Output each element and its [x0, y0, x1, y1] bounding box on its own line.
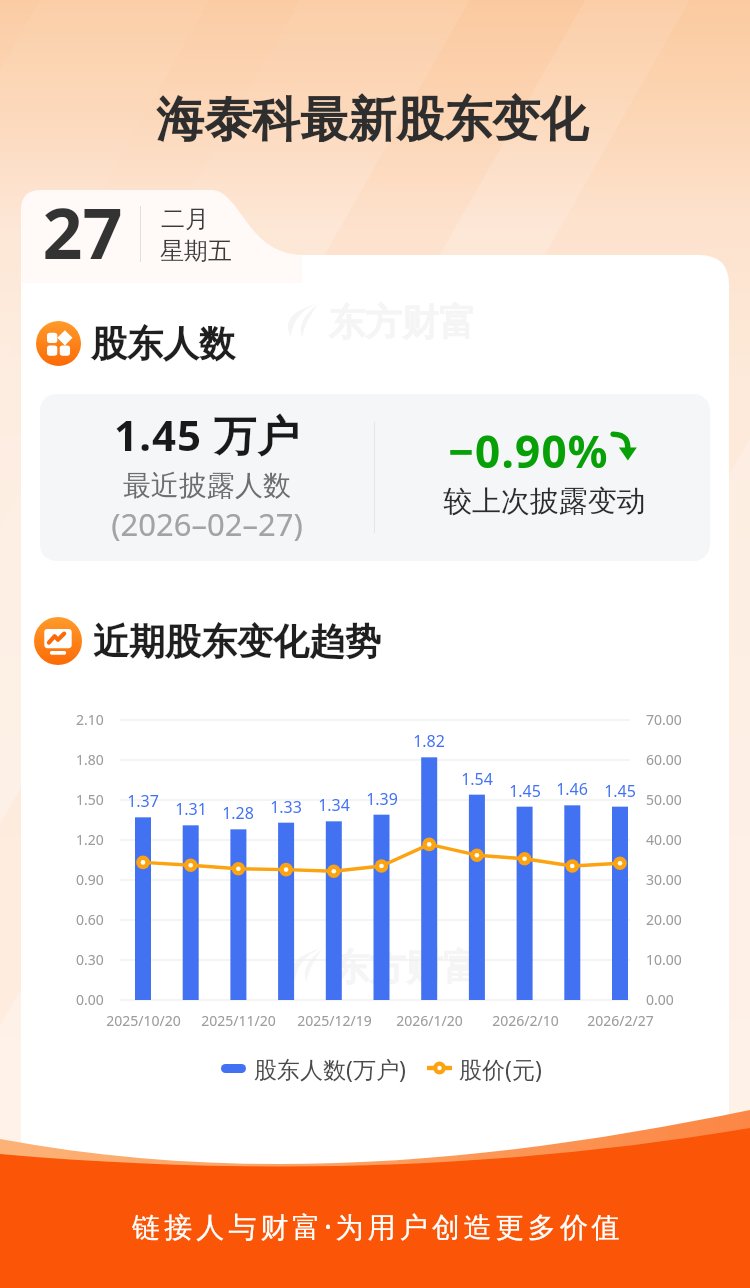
staticText: 1.45	[604, 780, 636, 802]
staticText: 2026/2/27	[587, 1011, 654, 1030]
staticText: 30.00	[646, 870, 682, 889]
staticText: 2026/2/10	[492, 1011, 559, 1030]
button[interactable]: Trend	[34, 617, 381, 665]
staticText: 60.00	[646, 750, 682, 769]
staticText: 27	[42, 184, 123, 264]
staticText: 1.33	[270, 796, 302, 818]
staticText: 1.82	[413, 730, 445, 752]
staticText: 股东人数	[91, 321, 235, 366]
staticText: 股价(元)	[459, 1053, 542, 1084]
staticText: 2.10	[76, 710, 104, 729]
staticText: 2026/1/20	[396, 1011, 463, 1030]
staticText: 0.90	[76, 870, 104, 889]
staticText: 0.30	[76, 950, 104, 969]
staticText: 0.00	[76, 990, 104, 1009]
other: Trend	[34, 617, 82, 665]
staticText: 50.00	[646, 790, 682, 809]
staticText: 较上次披露变动	[443, 483, 646, 520]
staticText: −0.90%	[448, 421, 609, 481]
staticText: 星期五	[160, 236, 232, 266]
staticText: 近期股东变化趋势	[93, 619, 381, 664]
button[interactable]	[21, 190, 273, 282]
staticText: 1.34	[318, 794, 350, 816]
staticText: 东方财富	[328, 299, 476, 346]
staticText: 1.45 万户	[114, 406, 300, 463]
other: Shareholders	[36, 321, 81, 366]
staticText: 1.45	[509, 780, 541, 802]
staticText: 二月	[161, 204, 209, 234]
staticText: 40.00	[646, 830, 682, 849]
staticText: 20.00	[646, 910, 682, 929]
staticText: 东方财富	[332, 944, 480, 991]
staticText: 1.20	[76, 830, 104, 849]
staticText: 2025/12/19	[297, 1011, 372, 1030]
staticText: 70.00	[646, 710, 682, 729]
staticText: (2026–02–27)	[111, 503, 303, 545]
button[interactable]: Shareholders	[36, 321, 235, 366]
staticText: 10.00	[646, 950, 682, 969]
staticText: 1.28	[222, 802, 254, 824]
staticText: 1.39	[366, 788, 398, 810]
staticText: 1.50	[76, 790, 104, 809]
staticText: 海泰科最新股东变化	[156, 90, 588, 150]
staticText: 0.00	[646, 990, 674, 1009]
staticText: 最近披露人数	[123, 468, 291, 503]
staticText: 链接人与财富·为用户创造更多价值	[132, 1207, 624, 1245]
staticText: 1.46	[556, 778, 588, 800]
staticText: 1.80	[76, 750, 104, 769]
staticText: 1.37	[127, 790, 159, 812]
staticText: 股东人数(万户)	[254, 1053, 406, 1084]
staticText: 2025/10/20	[106, 1011, 181, 1030]
staticText: 0.60	[76, 910, 104, 929]
staticText: 1.54	[461, 768, 493, 790]
staticText: 1.31	[175, 798, 207, 820]
staticText: 2025/11/20	[201, 1011, 276, 1030]
